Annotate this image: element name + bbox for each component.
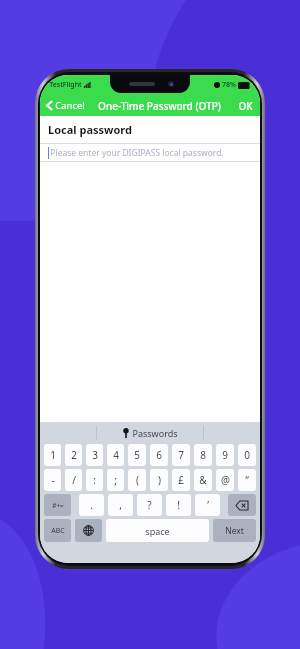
button[interactable]: 0 bbox=[238, 444, 256, 466]
button[interactable]: @ bbox=[216, 469, 234, 491]
button[interactable]: : bbox=[86, 469, 103, 491]
staticText: Cancel bbox=[55, 99, 85, 112]
staticText: 7 bbox=[178, 448, 184, 462]
button[interactable]: 5 bbox=[128, 444, 146, 466]
button[interactable]: , bbox=[108, 494, 133, 516]
button[interactable]: OK bbox=[231, 97, 260, 115]
staticText: Local password bbox=[48, 122, 132, 137]
staticText: & bbox=[199, 473, 207, 487]
staticText: TestFlight bbox=[49, 80, 82, 90]
button[interactable]: & bbox=[194, 469, 212, 491]
button[interactable]: 6 bbox=[150, 444, 168, 466]
button[interactable]: 3 bbox=[86, 444, 103, 466]
button[interactable]: 1 bbox=[44, 444, 61, 466]
staticText: 6 bbox=[156, 448, 162, 462]
staticText: 2 bbox=[71, 448, 77, 462]
staticText: ! bbox=[177, 498, 180, 512]
button[interactable]: ; bbox=[107, 469, 124, 491]
staticText: OK bbox=[238, 99, 253, 113]
button[interactable]: £ bbox=[172, 469, 190, 491]
button[interactable]: space bbox=[106, 519, 209, 542]
button[interactable]: ’ bbox=[195, 494, 220, 516]
staticText: Passwords bbox=[132, 427, 178, 439]
staticText: 3 bbox=[92, 448, 98, 462]
staticText: ( bbox=[136, 473, 139, 487]
button[interactable]: 9 bbox=[216, 444, 234, 466]
button[interactable]: 4 bbox=[107, 444, 124, 466]
button[interactable]: 8 bbox=[194, 444, 212, 466]
button[interactable]: ) bbox=[150, 469, 168, 491]
button[interactable]: ? bbox=[137, 494, 162, 516]
staticText: 4 bbox=[113, 448, 119, 462]
button[interactable]: / bbox=[65, 469, 82, 491]
staticText: 0 bbox=[244, 448, 250, 462]
staticText: Next bbox=[225, 525, 244, 537]
staticText: ABC bbox=[51, 526, 65, 536]
staticText: £ bbox=[178, 473, 184, 487]
staticText: 5 bbox=[134, 448, 140, 462]
staticText: 8 bbox=[200, 448, 206, 462]
button[interactable]: #+= bbox=[44, 494, 71, 516]
button[interactable]: ( bbox=[128, 469, 146, 491]
button[interactable]: . bbox=[79, 494, 104, 516]
staticText: 1 bbox=[50, 448, 56, 462]
staticText: “ bbox=[245, 473, 249, 487]
staticText: ; bbox=[114, 473, 117, 487]
button[interactable]: 2 bbox=[65, 444, 82, 466]
button[interactable]: Change keyboard bbox=[75, 519, 102, 542]
button[interactable]: Backspace bbox=[228, 494, 256, 516]
staticText: : bbox=[93, 473, 96, 487]
staticText: 9 bbox=[222, 448, 228, 462]
staticText: / bbox=[72, 473, 76, 487]
button[interactable]: 7 bbox=[172, 444, 190, 466]
button[interactable]: ABC bbox=[44, 519, 71, 542]
button[interactable]: ! bbox=[166, 494, 191, 516]
button[interactable]: Next bbox=[213, 519, 256, 542]
staticText: - bbox=[51, 473, 55, 487]
button[interactable]: Cancel bbox=[40, 97, 89, 114]
staticText: #+= bbox=[52, 501, 64, 510]
button[interactable]: - bbox=[44, 469, 61, 491]
button[interactable]: Passwords bbox=[117, 425, 184, 441]
staticText: One-Time Password (OTP) bbox=[98, 99, 221, 113]
staticText: . bbox=[90, 498, 93, 512]
staticText: ) bbox=[158, 473, 161, 487]
staticText: @ bbox=[221, 473, 230, 487]
staticText: 78% bbox=[222, 80, 236, 90]
staticText: , bbox=[119, 498, 122, 512]
staticText: Please enter your DIGIPASS local passwor… bbox=[50, 147, 224, 159]
staticText: space bbox=[145, 525, 170, 537]
button[interactable]: “ bbox=[238, 469, 256, 491]
staticText: ’ bbox=[207, 498, 209, 512]
staticText: ? bbox=[147, 498, 152, 512]
